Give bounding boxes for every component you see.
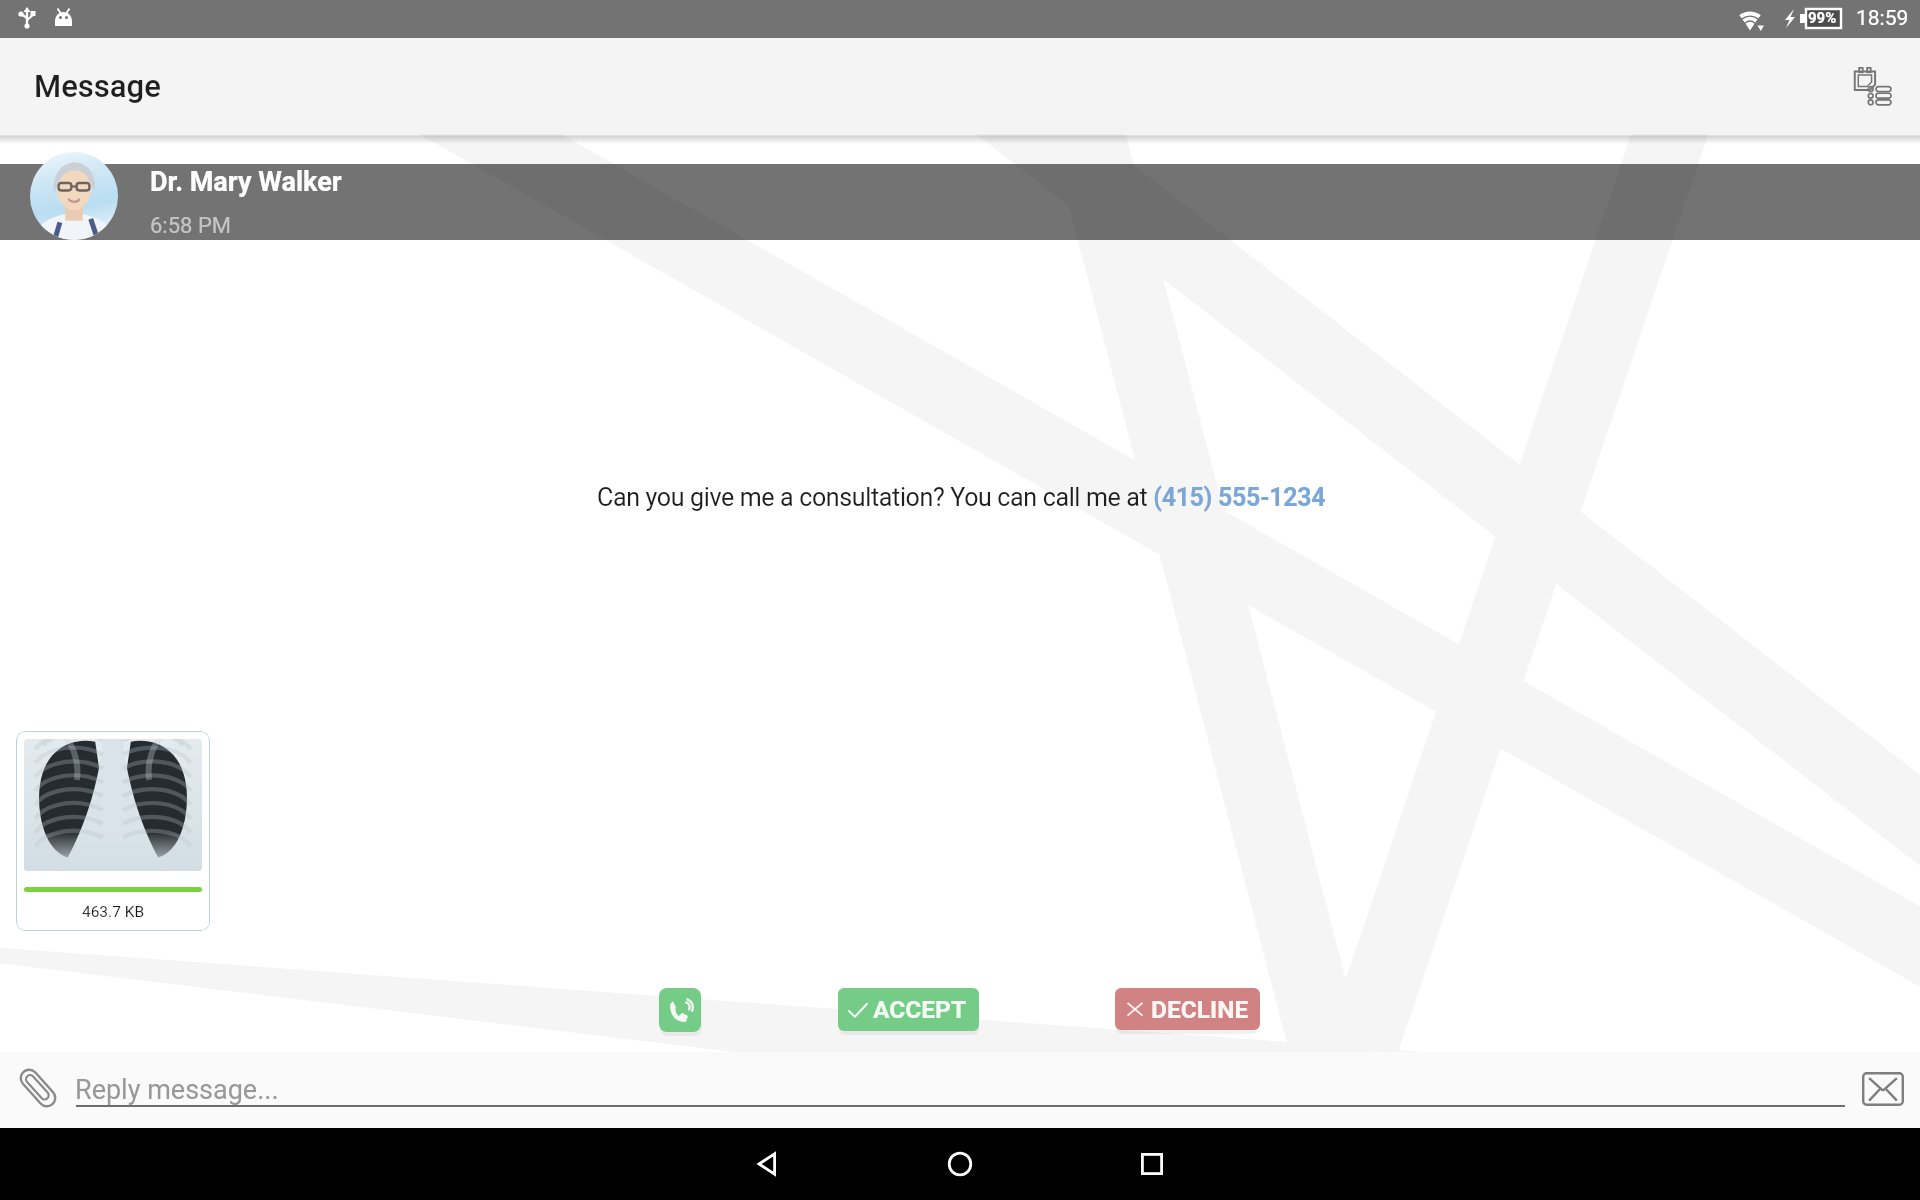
button[interactable]: Can you give me a consultation? You can … [597, 483, 1326, 512]
button[interactable]: Home [924, 1128, 996, 1200]
staticText: 18:59 [1856, 6, 1909, 31]
button[interactable]: Recents [1116, 1128, 1188, 1200]
staticText: 99% [1808, 9, 1837, 27]
staticText: ACCEPT [873, 995, 967, 1024]
button[interactable]: DECLINE [1115, 988, 1260, 1030]
staticText: 6:58 PM [150, 213, 231, 239]
button[interactable]: Dr. Mary Walker [0, 164, 1920, 240]
staticText: Can you give me a consultation? You can … [597, 483, 1326, 512]
button[interactable]: Attach file [10, 1060, 66, 1116]
button[interactable]: Send [1856, 1064, 1910, 1114]
button[interactable]: Call [659, 988, 701, 1032]
button[interactable]: ACCEPT [838, 988, 979, 1031]
button[interactable]: Notes [1839, 53, 1905, 119]
button[interactable]: 463.7 KB [16, 731, 210, 931]
staticText: 463.7 KB [24, 903, 202, 921]
staticText: Message [34, 68, 161, 104]
staticText: Reply message... [75, 1074, 279, 1106]
staticText: Dr. Mary Walker [150, 166, 342, 198]
button[interactable]: Back [732, 1128, 804, 1200]
staticText: DECLINE [1151, 995, 1249, 1024]
